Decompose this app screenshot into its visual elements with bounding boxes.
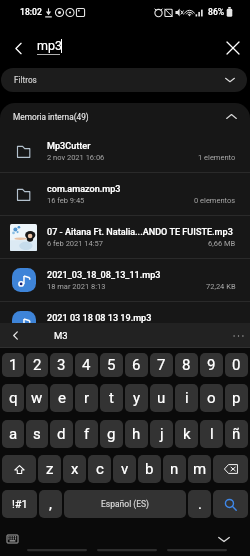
staticText: 5: [107, 356, 116, 374]
staticText: u: [157, 389, 166, 407]
button[interactable]: w: [26, 384, 48, 412]
button[interactable]: 8: [175, 353, 198, 377]
button[interactable]: g: [100, 420, 123, 448]
staticText: ,: [49, 495, 52, 513]
staticText: 0 elementos: [194, 196, 236, 205]
staticText: q: [9, 389, 18, 407]
button[interactable]: 2: [26, 353, 48, 377]
button[interactable]: e: [50, 384, 73, 412]
button[interactable]: Backspace: [213, 455, 248, 483]
staticText: x: [71, 460, 79, 478]
button[interactable]: 0: [225, 353, 248, 377]
button[interactable]: 4: [75, 353, 98, 377]
staticText: 72,24 KB: [206, 282, 236, 291]
staticText: Memoria interna(49): [13, 112, 89, 122]
staticText: y: [133, 389, 141, 407]
staticText: f: [84, 425, 90, 443]
button[interactable]: 9: [200, 353, 223, 377]
staticText: t: [109, 389, 114, 407]
staticText: 2021 03 18 08 13 19.mp3: [47, 313, 152, 324]
staticText: m: [193, 460, 207, 478]
button[interactable]: Filtros: [1, 68, 247, 92]
staticText: 2021_03_18_08_13_11.mp3: [47, 270, 161, 281]
button[interactable]: 5: [100, 353, 123, 377]
button[interactable]: j: [150, 420, 173, 448]
button[interactable]: ,: [39, 490, 62, 518]
staticText: Español (ES): [101, 499, 150, 509]
staticText: 07 - Aitana Ft. Natalia...ANDO TE FUISTE…: [47, 227, 233, 238]
button[interactable]: Hide keyboard: [213, 528, 235, 550]
button[interactable]: t: [100, 384, 123, 412]
staticText: 4: [82, 356, 91, 374]
button[interactable]: b: [138, 455, 161, 483]
button[interactable]: Keyboard settings: [2, 528, 23, 549]
staticText: p: [232, 389, 241, 407]
staticText: 1: [9, 356, 18, 374]
button[interactable]: 2021_03_18_08_13_11.mp3: [0, 259, 250, 301]
button[interactable]: 2021 03 18 08 13 19.mp3: [0, 302, 250, 344]
button[interactable]: ñ: [225, 420, 248, 448]
staticText: l: [210, 425, 214, 443]
staticText: 18 mar 2021 8:13: [47, 282, 106, 291]
button[interactable]: p: [225, 384, 248, 412]
button[interactable]: d: [50, 420, 73, 448]
button[interactable]: Memoria interna(49): [0, 103, 250, 130]
button[interactable]: .: [188, 490, 211, 518]
staticText: k: [183, 425, 191, 443]
button[interactable]: 7: [150, 353, 173, 377]
staticText: .: [198, 495, 202, 513]
staticText: a: [9, 425, 18, 443]
staticText: 3: [57, 356, 66, 374]
button[interactable]: c: [88, 455, 111, 483]
button[interactable]: h: [125, 420, 148, 448]
button[interactable]: m: [188, 455, 211, 483]
button[interactable]: Mp3Cutter: [0, 130, 250, 172]
staticText: e: [58, 389, 66, 407]
button[interactable]: l: [200, 420, 223, 448]
button[interactable]: z: [38, 455, 61, 483]
staticText: o: [207, 389, 216, 407]
staticText: d: [57, 425, 66, 443]
button[interactable]: k: [175, 420, 198, 448]
button[interactable]: n: [163, 455, 186, 483]
button[interactable]: v: [113, 455, 136, 483]
button[interactable]: com.amazon.mp3: [0, 173, 250, 215]
button[interactable]: Previous suggestions: [6, 323, 25, 348]
staticText: z: [46, 460, 54, 478]
button[interactable]: r: [75, 384, 98, 412]
button[interactable]: Español (ES): [64, 490, 186, 518]
staticText: mp3: [37, 38, 63, 53]
button[interactable]: u: [150, 384, 173, 412]
button[interactable]: Clear search: [219, 34, 247, 62]
button[interactable]: a: [2, 420, 24, 448]
button[interactable]: f: [75, 420, 98, 448]
button[interactable]: 1: [2, 353, 24, 377]
staticText: c: [96, 460, 104, 478]
button[interactable]: Search: [213, 490, 248, 518]
staticText: g: [107, 425, 116, 443]
staticText: 9: [207, 356, 216, 374]
button[interactable]: x: [63, 455, 86, 483]
button[interactable]: M3: [42, 323, 80, 348]
button[interactable]: s: [26, 420, 48, 448]
button[interactable]: y: [125, 384, 148, 412]
button[interactable]: o: [200, 384, 223, 412]
staticText: 2: [33, 356, 42, 374]
button[interactable]: Shift: [2, 455, 36, 483]
staticText: 86%: [208, 7, 225, 17]
button[interactable]: 3: [50, 353, 73, 377]
staticText: 1 elemento: [198, 153, 236, 162]
staticText: b: [145, 460, 154, 478]
staticText: j: [160, 425, 164, 443]
button[interactable]: !#1: [2, 490, 37, 518]
staticText: 6 feb 2021 14:57: [47, 239, 104, 248]
button[interactable]: More options: [228, 323, 248, 348]
staticText: 18:02: [20, 7, 42, 17]
staticText: Mp3Cutter: [47, 141, 91, 152]
button[interactable]: q: [2, 384, 24, 412]
button[interactable]: Back: [4, 34, 32, 62]
button[interactable]: i: [175, 384, 198, 412]
button[interactable]: 6: [125, 353, 148, 377]
staticText: !#1: [12, 498, 28, 511]
button[interactable]: 07 - Aitana Ft. Natalia...ANDO TE FUISTE…: [0, 216, 250, 258]
